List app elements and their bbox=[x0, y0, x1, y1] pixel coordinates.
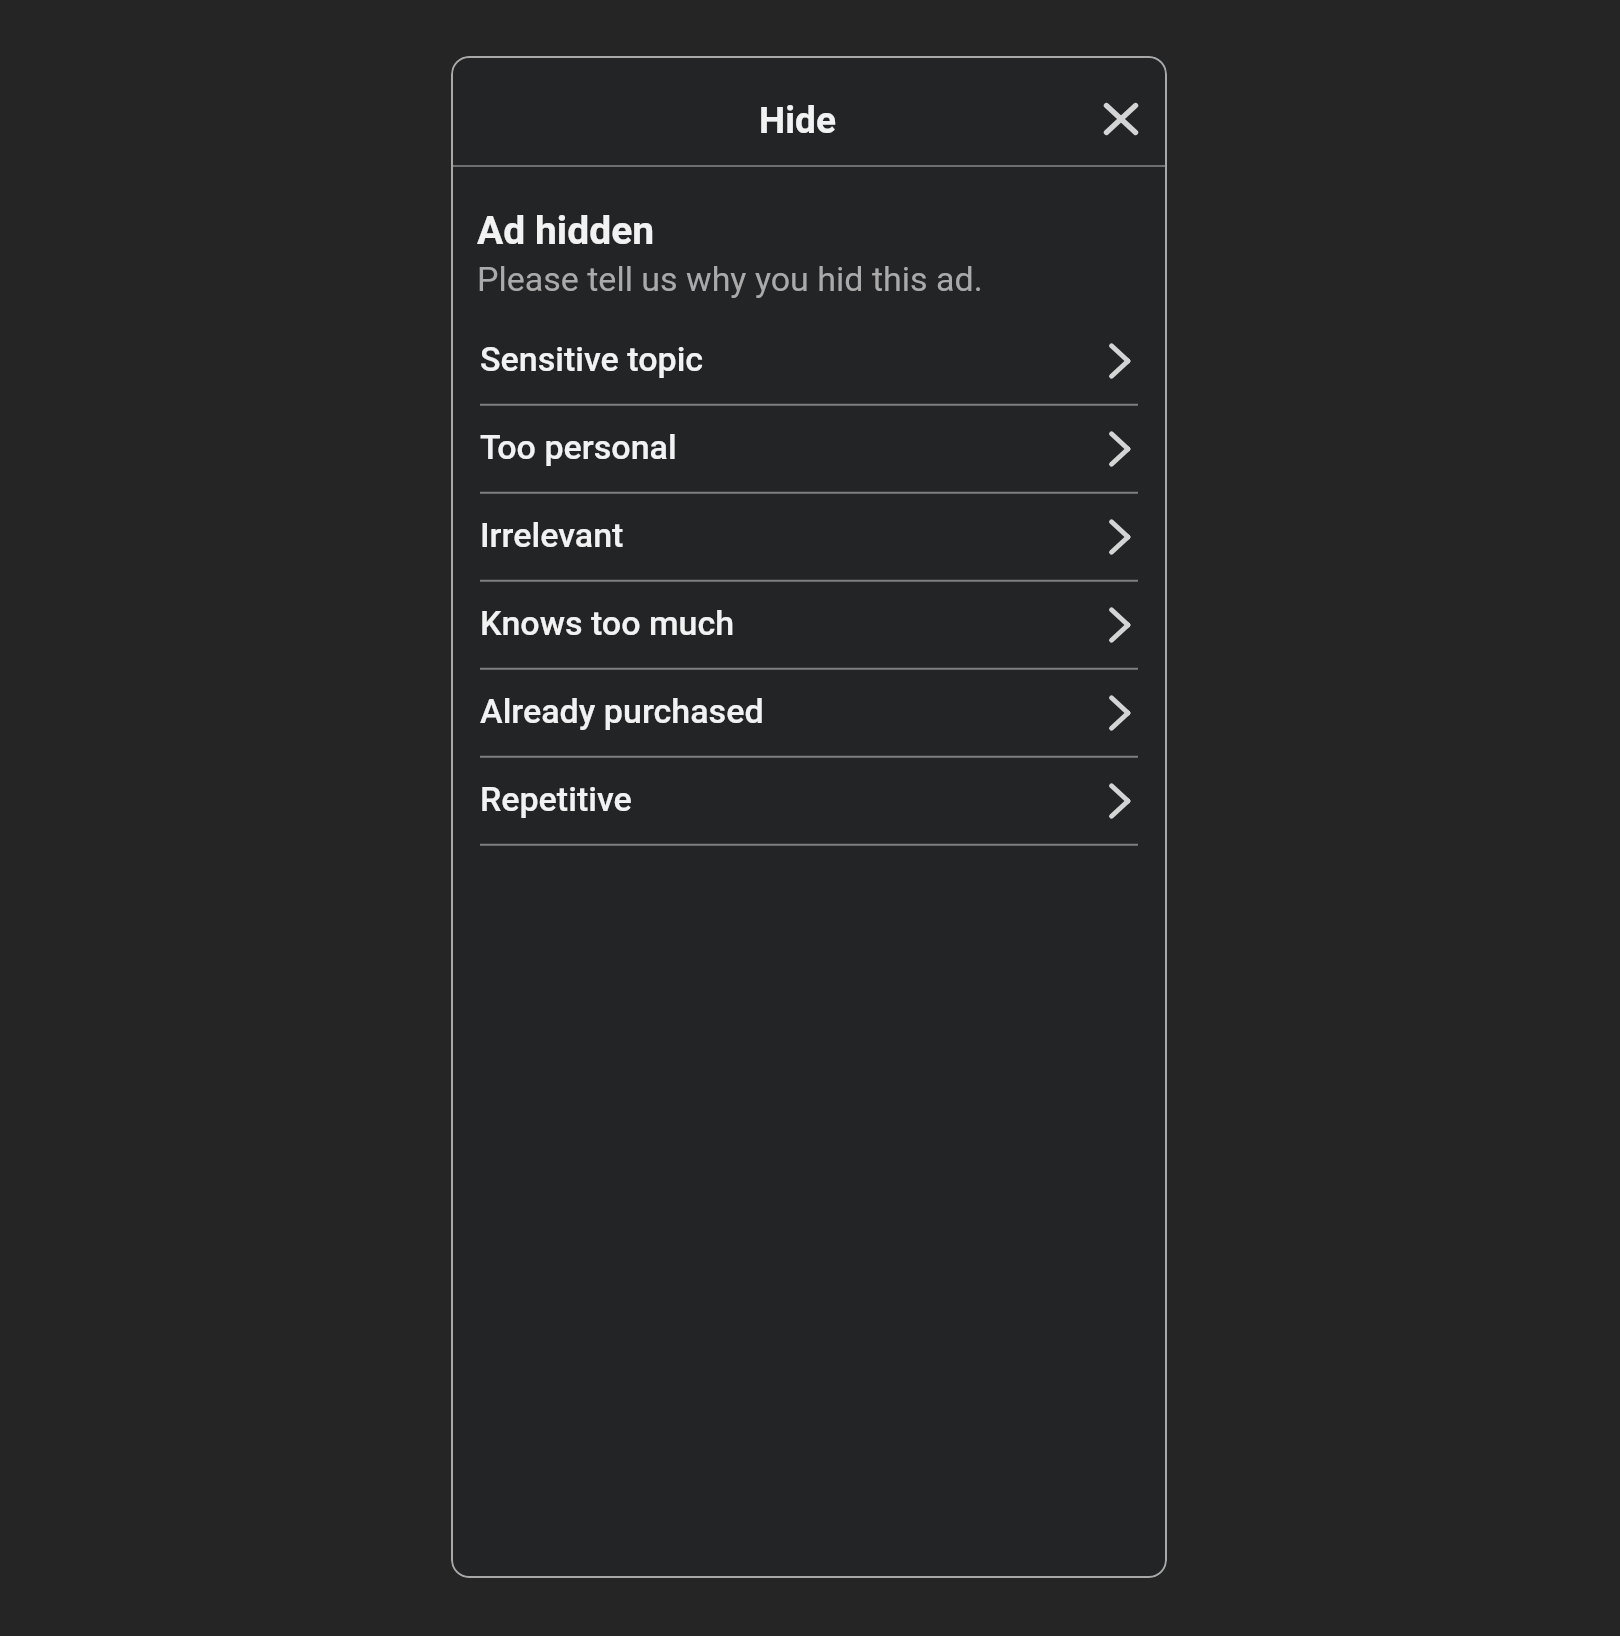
staticText: Knows too much bbox=[480, 603, 735, 643]
button[interactable]: Close bbox=[1089, 87, 1153, 151]
button[interactable]: Repetitive bbox=[480, 758, 1138, 846]
button[interactable]: Already purchased bbox=[480, 670, 1138, 758]
button[interactable]: Knows too much bbox=[480, 582, 1138, 670]
button[interactable]: Too personal bbox=[480, 406, 1138, 494]
staticText: Too personal bbox=[480, 427, 677, 467]
staticText: Hide bbox=[759, 99, 836, 142]
staticText: Repetitive bbox=[480, 779, 632, 819]
button[interactable]: Sensitive topic bbox=[480, 318, 1138, 406]
staticText: Please tell us why you hid this ad. bbox=[477, 259, 983, 299]
staticText: Ad hidden bbox=[477, 208, 655, 254]
button[interactable]: Irrelevant bbox=[480, 494, 1138, 582]
staticText: Already purchased bbox=[480, 691, 764, 731]
staticText: Sensitive topic bbox=[480, 339, 704, 379]
staticText: Irrelevant bbox=[480, 515, 624, 555]
